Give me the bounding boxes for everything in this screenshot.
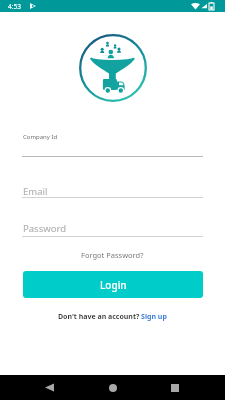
button[interactable]: Don't have an account? Sign up (0, 310, 225, 324)
staticText: Login (100, 278, 127, 292)
staticText: Password (23, 222, 66, 235)
button[interactable]: Email (23, 185, 48, 198)
staticText: Don't have an account? Sign up (58, 312, 167, 322)
other: Back (45, 383, 54, 392)
button[interactable]: Login (23, 271, 203, 298)
other: Home (109, 384, 117, 392)
staticText: Forgot Password? (81, 250, 144, 260)
staticText: Email (23, 185, 48, 198)
staticText: Company Id (23, 133, 58, 141)
button[interactable]: Company Id (23, 133, 58, 141)
button[interactable]: Forgot Password? (0, 248, 225, 262)
staticText: 4:53 (8, 2, 21, 11)
button[interactable]: Password (23, 222, 66, 235)
